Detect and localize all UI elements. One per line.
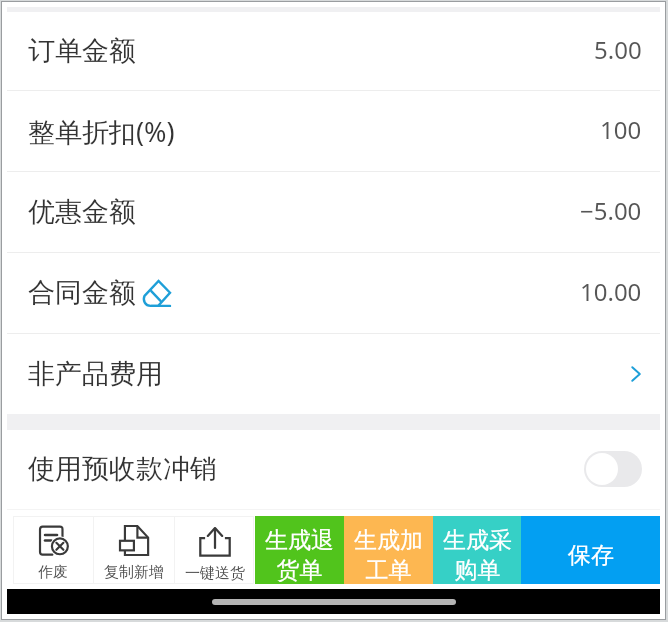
staticText: 复制新增 [104,563,164,582]
staticText: 保存 [568,541,614,570]
staticText: 100 [600,113,642,146]
button[interactable]: 一键送货 [175,516,254,584]
staticText: 非产品费用 [28,357,163,391]
staticText: 一键送货 [185,564,245,583]
button[interactable]: 保存 [521,516,660,584]
staticText: 5.00 [594,33,642,66]
button[interactable]: 生成加 工单 [344,516,433,584]
staticText: 生成加 工单 [354,526,423,585]
staticText: 合同金额 [28,276,136,310]
staticText: 整单折扣(%) [28,113,175,150]
staticText: 生成退 货单 [265,526,334,585]
staticText: 使用预收款冲销 [28,452,217,486]
button[interactable]: 合同金额 [7,253,660,333]
button[interactable]: 非产品费用 [7,334,660,414]
staticText: 10.00 [580,275,642,308]
staticText: 生成采 购单 [443,526,512,585]
staticText: 作废 [38,563,68,582]
button[interactable]: 生成采 购单 [433,516,521,584]
staticText: 优惠金额 [28,195,136,229]
button[interactable]: Use advance payment offset [584,451,642,487]
staticText: 订单金额 [28,34,136,68]
button[interactable]: 优惠金额 [7,172,660,252]
button[interactable]: Clear contract amount [143,279,171,307]
button[interactable]: 复制新增 [94,516,174,584]
button[interactable]: 整单折扣(%) [7,91,660,171]
button[interactable]: 订单金额 [7,12,660,90]
button[interactable]: 使用预收款冲销 [7,430,660,508]
button[interactable]: 作废 [13,516,93,584]
button[interactable]: 生成退 货单 [255,516,344,584]
staticText: −5.00 [580,194,642,227]
